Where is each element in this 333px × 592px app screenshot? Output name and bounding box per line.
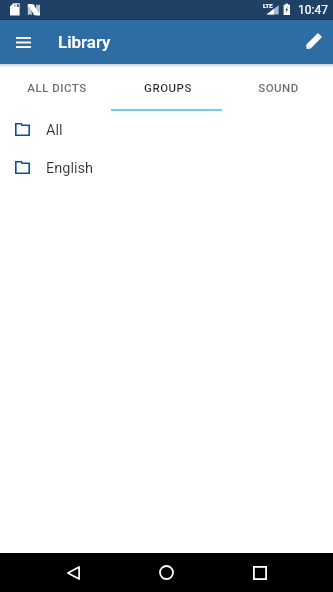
staticText: English xyxy=(46,160,93,177)
staticText: GROUPS xyxy=(144,81,192,94)
staticText: 10:47 xyxy=(298,3,328,17)
button[interactable]: Recents xyxy=(240,553,280,592)
button[interactable]: Home xyxy=(146,553,186,592)
button[interactable]: GROUPS xyxy=(111,64,222,110)
button[interactable]: ALL DICTS xyxy=(0,64,111,110)
button[interactable]: Open navigation drawer xyxy=(7,26,39,58)
button[interactable]: Back xyxy=(53,553,93,592)
button[interactable]: Edit xyxy=(297,25,331,59)
button[interactable]: All xyxy=(0,110,333,148)
staticText: SOUND xyxy=(258,81,299,94)
button[interactable]: English xyxy=(0,148,333,186)
staticText: Library xyxy=(58,32,111,52)
staticText: LTE xyxy=(263,2,273,9)
staticText: ALL DICTS xyxy=(27,81,87,94)
button[interactable]: SOUND xyxy=(222,64,333,110)
staticText: All xyxy=(46,122,63,139)
